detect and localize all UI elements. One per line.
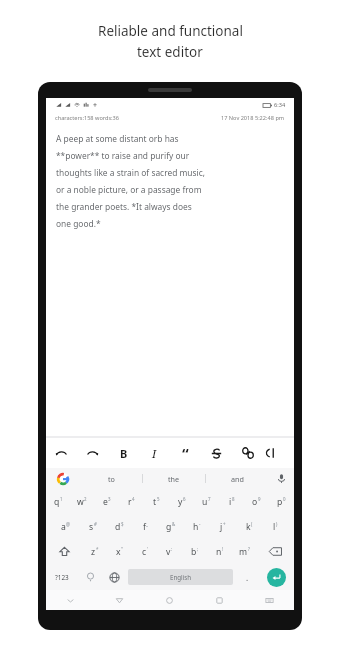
button[interactable]: d xyxy=(106,514,132,539)
button[interactable]: i xyxy=(219,489,244,514)
button[interactable]: u xyxy=(194,489,219,514)
button[interactable]: y xyxy=(169,489,194,514)
button[interactable]: q xyxy=(46,489,70,514)
staticText: a xyxy=(61,521,66,533)
button[interactable]: Undo xyxy=(46,438,77,468)
button[interactable]: and xyxy=(206,468,268,489)
button[interactable]: g xyxy=(158,514,184,539)
button[interactable]: Google xyxy=(46,468,80,489)
button[interactable]: j xyxy=(210,514,236,539)
staticText: English xyxy=(170,573,192,581)
button[interactable]: ?123 xyxy=(46,564,78,590)
staticText: 1 xyxy=(60,496,63,502)
button[interactable]: v xyxy=(157,539,182,564)
staticText: b xyxy=(191,546,197,558)
button[interactable]: a xyxy=(52,514,79,539)
button[interactable]: Strikethrough xyxy=(201,438,232,468)
button[interactable]: c xyxy=(132,539,157,564)
button[interactable]: z xyxy=(82,539,107,564)
staticText: one good.* xyxy=(56,218,101,229)
staticText: ( xyxy=(251,521,253,527)
staticText: x xyxy=(116,546,121,558)
staticText: the grander poets. *It always does xyxy=(56,201,192,212)
button[interactable]: the xyxy=(143,468,205,489)
button[interactable]: to xyxy=(80,468,142,489)
staticText: B xyxy=(120,446,128,461)
button[interactable]: Enter xyxy=(259,564,294,590)
button[interactable]: More xyxy=(263,438,294,468)
button[interactable]: Redo xyxy=(77,438,108,468)
staticText: $ xyxy=(121,521,124,527)
button[interactable]: s xyxy=(79,514,106,539)
staticText: o xyxy=(252,496,258,508)
staticText: the xyxy=(168,474,180,484)
staticText: u xyxy=(202,496,208,508)
staticText: s xyxy=(89,521,94,533)
staticText: text editor xyxy=(137,43,203,61)
button[interactable]: l xyxy=(262,514,288,539)
button[interactable]: Backspace xyxy=(257,539,294,564)
staticText: “ xyxy=(182,443,189,463)
button[interactable]: h xyxy=(184,514,210,539)
staticText: . xyxy=(246,572,249,583)
staticText: ' xyxy=(147,546,148,552)
button[interactable]: English xyxy=(128,569,233,585)
staticText: * xyxy=(96,546,99,552)
staticText: e xyxy=(103,496,108,508)
staticText: - xyxy=(199,521,201,527)
staticText: ) xyxy=(276,521,278,527)
button[interactable]: e xyxy=(94,489,119,514)
staticText: 9 xyxy=(258,496,261,502)
button[interactable]: Home xyxy=(144,590,194,610)
button[interactable]: o xyxy=(244,489,269,514)
button[interactable]: Link xyxy=(232,438,263,468)
staticText: ! xyxy=(222,546,224,552)
staticText: k xyxy=(246,521,251,533)
button[interactable]: w xyxy=(70,489,94,514)
button[interactable]: Hide keyboard xyxy=(46,590,95,610)
staticText: 6:34 xyxy=(274,101,286,109)
button[interactable]: k xyxy=(236,514,262,539)
button[interactable]: r xyxy=(119,489,144,514)
staticText: characters:158 words:36 xyxy=(55,114,120,122)
staticText: _ xyxy=(146,521,148,527)
button[interactable]: x xyxy=(107,539,132,564)
button[interactable]: Switch keyboard xyxy=(244,590,294,610)
staticText: 2 xyxy=(84,496,87,502)
button[interactable]: p xyxy=(269,489,294,514)
staticText: 7 xyxy=(208,496,211,502)
button[interactable]: . xyxy=(235,564,259,590)
button[interactable]: Italic xyxy=(139,438,170,468)
button[interactable]: Bold xyxy=(108,438,139,468)
staticText: 3 xyxy=(108,496,111,502)
staticText: p xyxy=(277,496,283,508)
button[interactable]: Recents xyxy=(194,590,244,610)
staticText: 8 xyxy=(232,496,235,502)
staticText: and xyxy=(231,474,244,484)
button[interactable]: Shift xyxy=(46,539,82,564)
button[interactable]: n xyxy=(207,539,232,564)
button[interactable]: b xyxy=(182,539,207,564)
button[interactable]: Emoji xyxy=(78,564,102,590)
staticText: : xyxy=(171,546,173,552)
staticText: d xyxy=(115,521,121,533)
staticText: q xyxy=(54,496,60,508)
button[interactable]: Change language xyxy=(102,564,126,590)
button[interactable]: Back xyxy=(95,590,144,610)
staticText: y xyxy=(178,496,183,508)
staticText: c xyxy=(142,546,147,558)
staticText: A peep at some distant orb has xyxy=(56,133,179,144)
button[interactable]: m xyxy=(232,539,257,564)
staticText: i xyxy=(229,496,232,508)
button[interactable]: t xyxy=(144,489,169,514)
button[interactable]: f xyxy=(132,514,158,539)
staticText: t xyxy=(153,496,157,508)
button[interactable]: Quote xyxy=(170,438,201,468)
staticText: 5 xyxy=(157,496,160,502)
staticText: # xyxy=(94,521,97,527)
staticText: n xyxy=(216,546,222,558)
staticText: g xyxy=(166,521,172,533)
staticText: r xyxy=(128,496,132,508)
button[interactable]: Voice input xyxy=(268,468,294,489)
staticText: j xyxy=(220,521,223,533)
